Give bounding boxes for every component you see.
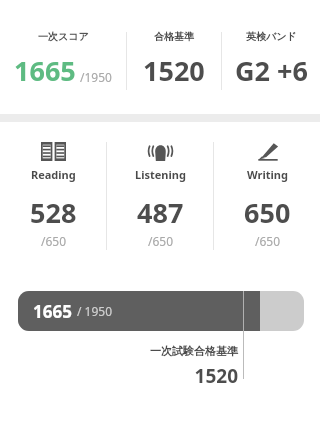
staticText: /650 <box>41 233 67 249</box>
button[interactable]: Listening <box>135 142 186 249</box>
staticText: 合格基準 <box>154 30 194 43</box>
staticText: 一次試験合格基準 <box>150 344 238 358</box>
staticText: / 1950 <box>77 303 113 319</box>
staticText: 1665 <box>33 300 72 323</box>
staticText: Reading <box>31 167 76 182</box>
staticText: /1950 <box>80 69 112 85</box>
button[interactable]: Writing <box>244 142 291 249</box>
staticText: 487 <box>137 194 184 231</box>
button[interactable]: 合格基準 <box>143 30 205 89</box>
button[interactable]: 1665 <box>18 291 304 331</box>
staticText: 英検バンド <box>246 30 297 43</box>
staticText: 1520 <box>143 52 205 89</box>
staticText: 650 <box>244 194 291 231</box>
staticText: 1665 <box>14 52 76 89</box>
staticText: /650 <box>255 233 281 249</box>
staticText: Writing <box>247 167 288 182</box>
staticText: 528 <box>30 194 77 231</box>
button[interactable]: 英検バンド <box>235 30 308 89</box>
button[interactable]: 一次スコア <box>14 30 112 89</box>
staticText: G2 +6 <box>235 52 308 89</box>
staticText: /650 <box>148 233 174 249</box>
staticText: 1520 <box>194 363 238 389</box>
staticText: 一次スコア <box>38 30 89 43</box>
staticText: Listening <box>135 167 186 182</box>
button[interactable]: Reading <box>30 142 77 249</box>
